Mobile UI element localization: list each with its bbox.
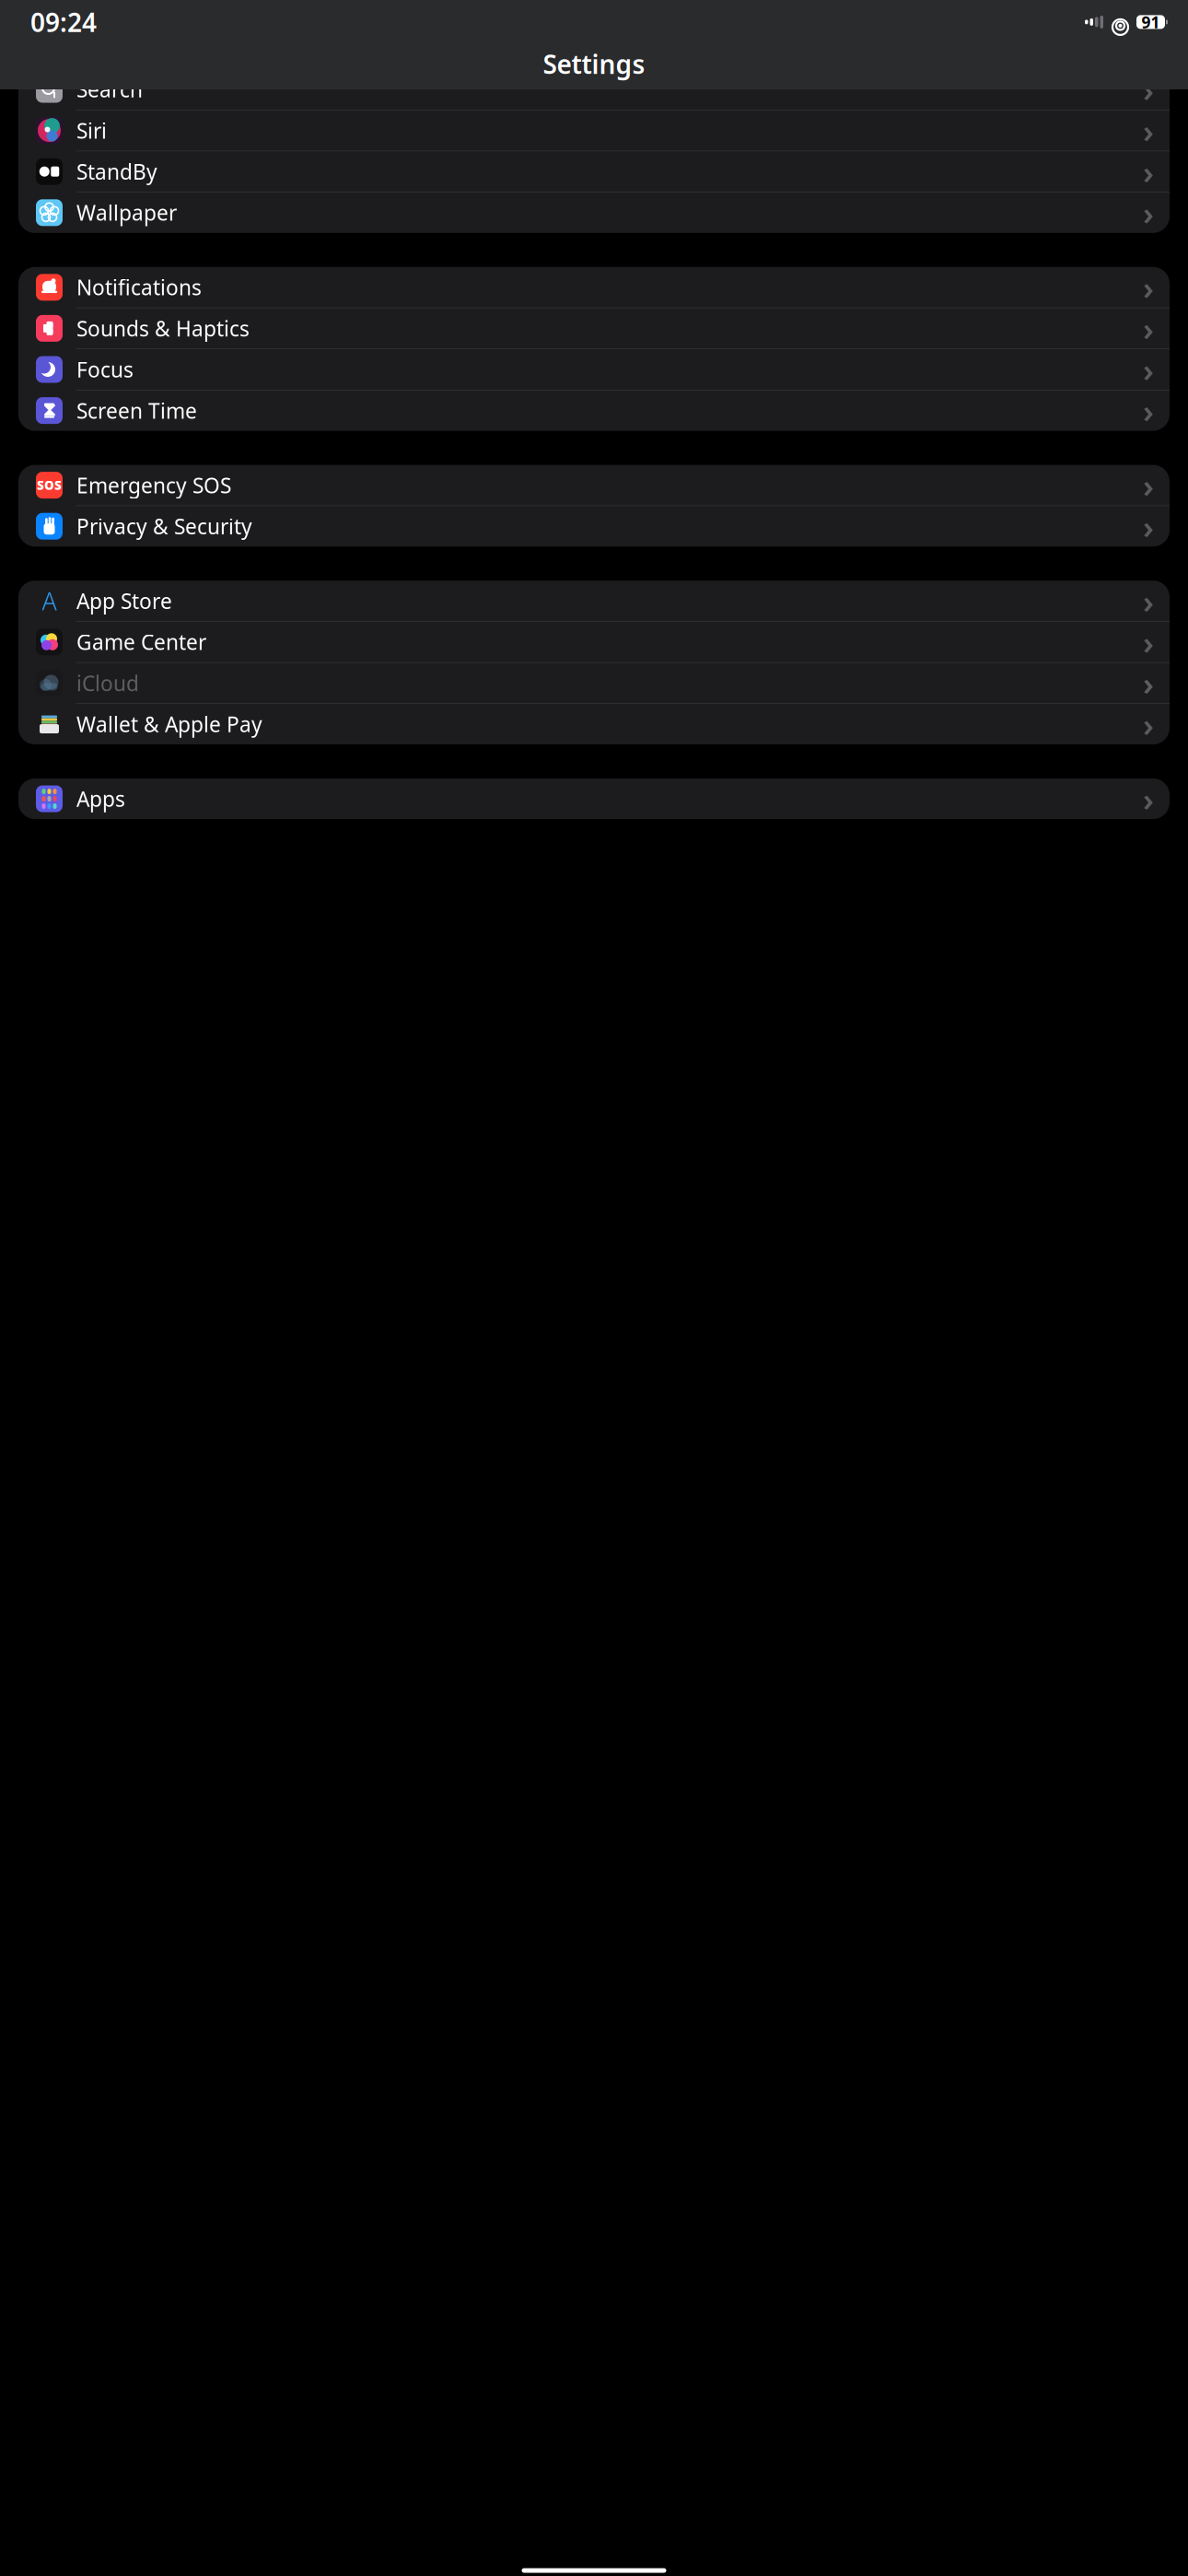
staticText: Search (76, 75, 143, 103)
button[interactable]: Siri (18, 110, 1170, 151)
staticText: iCloud (76, 669, 139, 697)
button[interactable]: Search (18, 69, 1170, 110)
staticText: › (1143, 150, 1154, 193)
button[interactable]: Settings (0, 47, 1188, 92)
staticText: › (1143, 109, 1154, 152)
staticText: Emergency SOS (76, 471, 231, 499)
staticText: Privacy & Security (76, 512, 252, 540)
button[interactable]: StandBy (18, 151, 1170, 192)
staticText: › (1143, 703, 1154, 745)
staticText: › (1143, 662, 1154, 704)
staticText: › (1143, 778, 1154, 820)
staticText: Wallpaper (76, 199, 177, 226)
staticText: › (1143, 68, 1154, 111)
staticText: › (1143, 505, 1154, 547)
staticText: Game Center (76, 628, 206, 656)
button[interactable]: Focus (18, 349, 1170, 390)
staticText: Siri (76, 117, 107, 144)
button[interactable]: Notifications (18, 267, 1170, 308)
staticText: 91 (1141, 11, 1160, 33)
button[interactable]: iCloud (18, 663, 1170, 704)
staticText: Focus (76, 356, 134, 383)
staticText: A (42, 585, 57, 617)
staticText: › (1143, 621, 1154, 663)
staticText: › (1143, 464, 1154, 506)
staticText: StandBy (76, 158, 157, 185)
staticText: Notifications (76, 273, 202, 301)
staticText: App Store (76, 587, 172, 615)
button[interactable]: Wallet & Apple Pay (18, 704, 1170, 744)
button[interactable]: SOS (18, 465, 1170, 506)
staticText: › (1143, 307, 1154, 350)
button[interactable]: Game Center (18, 622, 1170, 663)
staticText: Sounds & Haptics (76, 314, 250, 342)
staticText: Screen Time (76, 397, 197, 424)
button[interactable]: A (18, 581, 1170, 622)
staticText: › (1143, 191, 1154, 234)
button[interactable]: Privacy & Security (18, 506, 1170, 547)
staticText: › (1143, 348, 1154, 391)
staticText: › (1143, 580, 1154, 622)
button[interactable]: Sounds & Haptics (18, 308, 1170, 349)
staticText: ⧗ (43, 402, 56, 420)
staticText: SOS (37, 477, 62, 493)
button[interactable]: ⧗ (18, 390, 1170, 431)
staticText: 09:24 (30, 5, 97, 39)
staticText: › (1143, 266, 1154, 308)
staticText: › (1143, 389, 1154, 432)
staticText: Apps (76, 785, 125, 813)
button[interactable]: Wallpaper (18, 192, 1170, 233)
staticText: Wallet & Apple Pay (76, 710, 262, 738)
staticText: Settings (543, 47, 645, 81)
button[interactable]: Apps (18, 779, 1170, 819)
